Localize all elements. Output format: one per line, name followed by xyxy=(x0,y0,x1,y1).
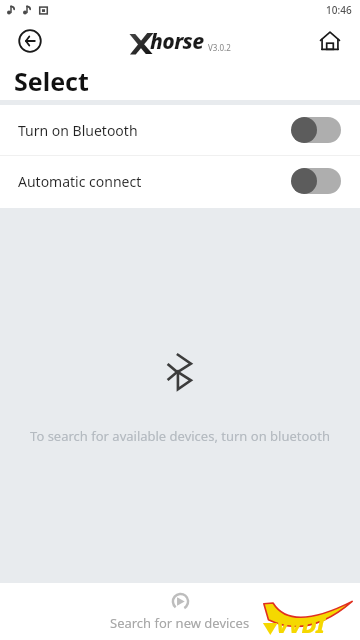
staticText: Select xyxy=(14,64,89,98)
staticText: horse xyxy=(150,27,204,56)
staticText: Search for new devices xyxy=(110,614,250,632)
button[interactable]: Turn on Bluetooth xyxy=(0,105,360,155)
button[interactable]: Back xyxy=(14,25,46,57)
button[interactable]: Search for new devices xyxy=(110,592,250,632)
button[interactable] xyxy=(291,117,341,143)
staticText: To search for available devices, turn on… xyxy=(30,427,330,445)
staticText: VVDI xyxy=(276,609,325,639)
button[interactable]: Home xyxy=(314,25,346,57)
button[interactable] xyxy=(291,168,341,194)
staticText: V3.0.2 xyxy=(208,42,231,53)
staticText: Automatic connect xyxy=(18,172,142,191)
staticText: 10:46 xyxy=(326,3,352,17)
staticText: Turn on Bluetooth xyxy=(18,121,138,140)
button[interactable]: Automatic connect xyxy=(0,156,360,206)
